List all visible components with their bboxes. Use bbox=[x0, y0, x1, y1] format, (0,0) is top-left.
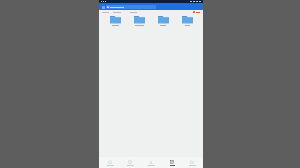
button[interactable] bbox=[106, 5, 156, 9]
button[interactable]: Folder bbox=[105, 15, 125, 26]
button[interactable]: Menu bbox=[99, 3, 203, 10]
button[interactable]: Home bbox=[100, 157, 120, 168]
button[interactable]: Folder bbox=[129, 15, 149, 26]
button[interactable]: Folder bbox=[177, 15, 197, 26]
button[interactable]: Files bbox=[162, 157, 182, 168]
button[interactable]: Downloads bbox=[141, 157, 161, 168]
button[interactable]: Menu bbox=[101, 5, 105, 9]
button[interactable]: More bbox=[182, 157, 202, 168]
button[interactable]: Alert bbox=[193, 11, 200, 13]
other: Alert bbox=[193, 11, 195, 13]
button[interactable]: Folder bbox=[153, 15, 173, 26]
button[interactable]: Recent bbox=[120, 157, 140, 168]
